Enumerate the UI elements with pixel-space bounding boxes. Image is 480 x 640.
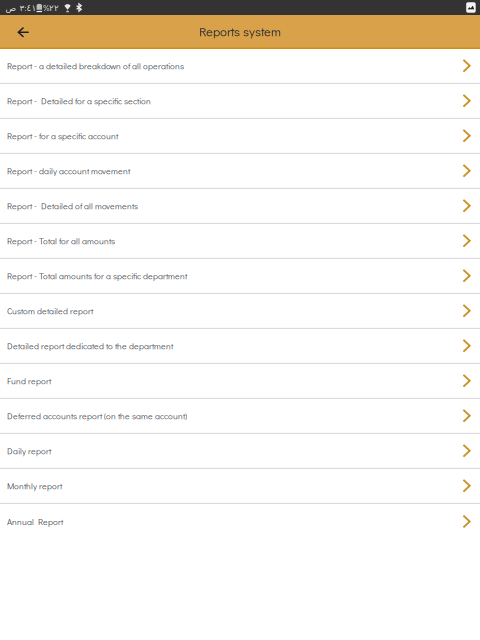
- staticText: Annual Report: [7, 516, 63, 527]
- staticText: Report - for a specific account: [7, 130, 118, 141]
- button[interactable]: Report - Detailed for a specific section: [0, 84, 480, 119]
- button[interactable]: Deferred accounts report (on the same ac…: [0, 399, 480, 434]
- button[interactable]: Detailed report dedicated to the departm…: [0, 329, 480, 364]
- button[interactable]: Report - Total for all amounts: [0, 224, 480, 259]
- staticText: Report - Total for all amounts: [7, 235, 115, 246]
- staticText: Deferred accounts report (on the same ac…: [7, 410, 187, 421]
- staticText: %٢٢: [43, 2, 59, 13]
- staticText: Detailed report dedicated to the departm…: [7, 340, 173, 351]
- button[interactable]: Fund report: [0, 364, 480, 399]
- button[interactable]: Monthly report: [0, 469, 480, 504]
- staticText: Daily report: [7, 445, 51, 456]
- button[interactable]: Report - for a specific account: [0, 119, 480, 154]
- button[interactable]: Report - Detailed of all movements: [0, 189, 480, 224]
- button[interactable]: Report - daily account movement: [0, 154, 480, 189]
- button[interactable]: Custom detailed report: [0, 294, 480, 329]
- staticText: Report - a detailed breakdown of all ope…: [7, 60, 184, 71]
- staticText: Fund report: [7, 375, 51, 386]
- staticText: Report - daily account movement: [7, 165, 130, 176]
- staticText: Report - Total amounts for a specific de…: [7, 270, 187, 281]
- button[interactable]: Daily report: [0, 434, 480, 469]
- staticText: Monthly report: [7, 480, 62, 491]
- staticText: Reports system: [199, 23, 281, 39]
- staticText: ٣:٤١ ص: [5, 2, 36, 13]
- button[interactable]: Annual Report: [0, 504, 480, 539]
- button[interactable]: Back: [0, 15, 40, 47]
- staticText: Report - Detailed of all movements: [7, 200, 138, 211]
- button[interactable]: Report - a detailed breakdown of all ope…: [0, 49, 480, 84]
- staticText: Custom detailed report: [7, 305, 93, 316]
- staticText: Report - Detailed for a specific section: [7, 95, 151, 106]
- button[interactable]: Report - Total amounts for a specific de…: [0, 259, 480, 294]
